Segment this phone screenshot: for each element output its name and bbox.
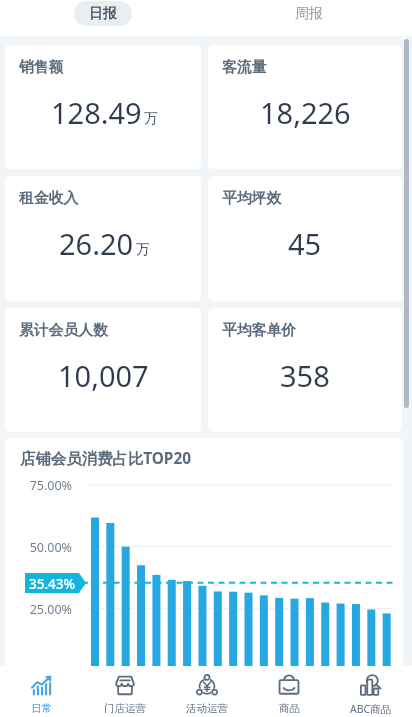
staticText: 店铺会员消费占比TOP20 <box>20 448 192 469</box>
button[interactable]: 门店运营 <box>83 666 166 717</box>
button[interactable]: 周报 <box>206 0 412 36</box>
button[interactable]: ABC商品 <box>330 666 412 717</box>
staticText: 45 <box>288 224 322 263</box>
staticText: 75.00% <box>29 477 72 493</box>
staticText: 门店运营 <box>104 702 146 715</box>
button[interactable]: 日报 <box>0 0 206 36</box>
button[interactable]: 日常 <box>0 666 83 717</box>
staticText: 26.20 <box>59 224 134 263</box>
button[interactable]: 活动运营 <box>166 666 248 717</box>
button[interactable]: 累计会员人数 <box>5 308 201 432</box>
staticText: 销售额 <box>19 58 64 77</box>
staticText: 18,226 <box>260 93 351 132</box>
staticText: 日常 <box>31 702 52 715</box>
staticText: 平均坪效 <box>222 189 282 208</box>
staticText: ABC商品 <box>350 702 392 716</box>
button[interactable]: 销售额 <box>5 45 201 169</box>
button[interactable]: 平均客单价 <box>208 308 402 432</box>
button[interactable]: 平均坪效 <box>208 176 402 301</box>
staticText: 35.43% <box>29 575 76 593</box>
staticText: 周报 <box>295 5 323 23</box>
staticText: 活动运营 <box>186 702 228 715</box>
staticText: 25.00% <box>29 601 72 617</box>
staticText: 累计会员人数 <box>19 321 108 340</box>
button[interactable]: 租金收入 <box>5 176 201 301</box>
staticText: 平均客单价 <box>222 321 296 340</box>
staticText: 128.49 <box>51 93 142 132</box>
staticText: 商品 <box>279 702 300 715</box>
staticText: 万 <box>144 110 158 128</box>
staticText: 50.00% <box>29 539 72 555</box>
button[interactable]: 商品 <box>248 666 330 717</box>
staticText: 358 <box>280 356 330 395</box>
staticText: 日报 <box>89 5 117 23</box>
staticText: 租金收入 <box>19 189 79 208</box>
button[interactable]: 客流量 <box>208 45 402 169</box>
staticText: 客流量 <box>222 58 267 77</box>
staticText: 10,007 <box>58 356 149 395</box>
staticText: 万 <box>136 241 150 259</box>
